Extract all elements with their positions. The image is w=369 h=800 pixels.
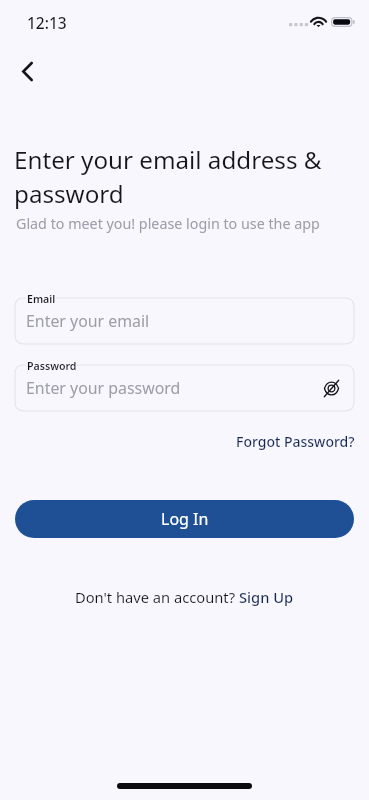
button[interactable]: Back <box>5 49 49 93</box>
button[interactable]: Forgot Password? <box>231 427 360 456</box>
button[interactable]: Show password <box>315 372 347 404</box>
staticText: Glad to meet you! please login to use th… <box>16 214 320 233</box>
staticText: 12:13 <box>27 12 67 33</box>
staticText: Log In <box>161 508 209 530</box>
staticText: Password <box>27 359 77 373</box>
staticText: Enter your email <box>26 310 150 332</box>
staticText: Don't have an account? <box>75 587 239 607</box>
staticText: Email <box>27 292 56 306</box>
button[interactable]: Log In <box>15 500 354 538</box>
staticText: Enter your email address & password <box>14 143 339 211</box>
staticText: Forgot Password? <box>236 432 355 451</box>
staticText: Sign Up <box>239 587 294 607</box>
staticText: Enter your password <box>26 377 181 399</box>
button[interactable]: Sign Up <box>239 585 294 609</box>
